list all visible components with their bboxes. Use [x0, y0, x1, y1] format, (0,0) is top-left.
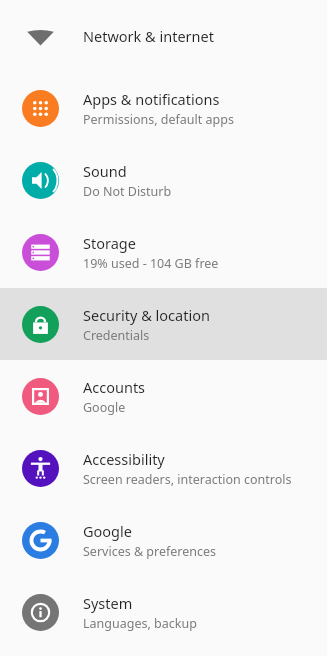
staticText: Sound — [83, 161, 127, 181]
other: Security and location — [22, 306, 59, 343]
staticText: Accounts — [83, 377, 146, 397]
other: Sound — [22, 162, 59, 199]
staticText: 19% used - 104 GB free — [83, 255, 219, 272]
button[interactable]: Apps and notifications — [0, 72, 327, 144]
staticText: Credentials — [83, 327, 150, 344]
button[interactable]: Security and location — [0, 288, 327, 360]
staticText: Google — [83, 521, 132, 541]
other: System — [22, 594, 59, 631]
other: Apps and notifications — [22, 90, 59, 127]
staticText: Apps & notifications — [83, 89, 220, 109]
button[interactable]: Sound — [0, 144, 327, 216]
staticText: Do Not Disturb — [83, 183, 172, 200]
button[interactable]: Google — [0, 504, 327, 576]
staticText: System — [83, 593, 133, 613]
staticText: Accessibility — [83, 449, 165, 469]
staticText: Screen readers, interaction controls — [83, 471, 292, 488]
staticText: Security & location — [83, 305, 210, 325]
button[interactable]: Network and internet — [0, 0, 327, 72]
other: Accessibility — [22, 450, 59, 487]
staticText: Permissions, default apps — [83, 111, 234, 128]
button[interactable]: Accounts — [0, 360, 327, 432]
staticText: Google — [83, 399, 126, 416]
button[interactable]: Accessibility — [0, 432, 327, 504]
button[interactable]: Storage — [0, 216, 327, 288]
staticText: Languages, backup — [83, 615, 197, 632]
staticText: Services & preferences — [83, 543, 217, 560]
other: Network and internet — [22, 18, 59, 55]
staticText: Storage — [83, 233, 136, 253]
other: Storage — [22, 234, 59, 271]
button[interactable]: System — [0, 576, 327, 648]
other: Accounts — [22, 378, 59, 415]
staticText: Network & internet — [83, 26, 214, 46]
other: Google — [22, 522, 59, 559]
